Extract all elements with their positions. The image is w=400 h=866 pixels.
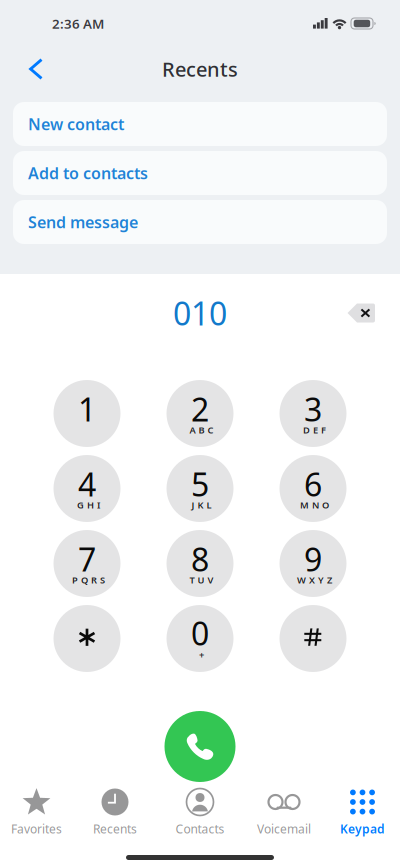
staticText: 2:36 AM bbox=[52, 15, 104, 32]
staticText: PQRS bbox=[72, 574, 105, 586]
staticText: 6 bbox=[304, 463, 322, 505]
staticText: Keypad bbox=[340, 821, 385, 837]
button[interactable] bbox=[279, 605, 346, 672]
staticText: + bbox=[199, 649, 204, 661]
staticText: 4 bbox=[78, 463, 96, 505]
button[interactable]: Favorites bbox=[0, 780, 73, 836]
staticText: MNO bbox=[300, 499, 329, 511]
button[interactable]: 2 bbox=[166, 380, 233, 447]
staticText: 8 bbox=[191, 538, 209, 580]
staticText: 3 bbox=[304, 388, 322, 430]
button[interactable] bbox=[53, 605, 120, 672]
button[interactable]: 3 bbox=[279, 380, 346, 447]
button[interactable]: Back bbox=[0, 49, 57, 89]
staticText: 1 bbox=[78, 388, 96, 430]
staticText: 7 bbox=[78, 538, 96, 580]
staticText: Contacts bbox=[175, 821, 224, 837]
staticText: WXYZ bbox=[297, 574, 332, 586]
button[interactable]: New contact bbox=[13, 102, 387, 146]
button[interactable]: Delete bbox=[338, 293, 384, 333]
staticText: New contact bbox=[28, 113, 124, 135]
button[interactable]: Voicemail bbox=[243, 780, 325, 836]
button[interactable]: 6 bbox=[279, 455, 346, 522]
button[interactable]: 1 bbox=[53, 380, 120, 447]
staticText: GHI bbox=[77, 499, 100, 511]
staticText: Recents bbox=[162, 56, 238, 82]
staticText: Voicemail bbox=[257, 821, 311, 837]
button[interactable]: Call bbox=[164, 711, 235, 782]
staticText: Send message bbox=[28, 211, 138, 233]
button[interactable]: 4 bbox=[53, 455, 120, 522]
button[interactable]: Add to contacts bbox=[13, 151, 387, 195]
staticText: 2 bbox=[191, 388, 209, 430]
staticText: Add to contacts bbox=[28, 162, 148, 184]
staticText: JKL bbox=[191, 499, 211, 511]
staticText: DEF bbox=[303, 424, 326, 436]
button[interactable]: Contacts bbox=[157, 780, 243, 836]
staticText: 010 bbox=[173, 292, 227, 334]
button[interactable]: Keypad bbox=[325, 780, 400, 836]
staticText: TUV bbox=[189, 574, 213, 586]
staticText: 9 bbox=[304, 538, 322, 580]
staticText: 5 bbox=[191, 463, 209, 505]
button[interactable]: 8 bbox=[166, 530, 233, 597]
staticText: 0 bbox=[191, 612, 209, 654]
staticText: Favorites bbox=[11, 821, 62, 837]
button[interactable]: 7 bbox=[53, 530, 120, 597]
staticText: Recents bbox=[93, 821, 137, 837]
button[interactable]: Recents bbox=[73, 780, 157, 836]
button[interactable]: 9 bbox=[279, 530, 346, 597]
staticText: ABC bbox=[189, 424, 213, 436]
button[interactable]: 0 bbox=[166, 605, 233, 672]
button[interactable]: Send message bbox=[13, 200, 387, 244]
button[interactable]: 5 bbox=[166, 455, 233, 522]
